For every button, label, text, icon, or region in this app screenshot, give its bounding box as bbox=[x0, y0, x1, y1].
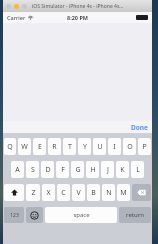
staticText: E bbox=[38, 142, 42, 152]
staticText: iOS Simulator - iPhone 4s - iPhone 4s… bbox=[32, 3, 124, 10]
button[interactable]: return bbox=[119, 207, 151, 224]
staticText: N bbox=[106, 188, 112, 198]
staticText: X bbox=[46, 188, 51, 198]
button[interactable]: E bbox=[33, 138, 46, 156]
button[interactable]: C bbox=[57, 184, 70, 202]
button[interactable]: Done bbox=[131, 121, 148, 133]
staticText: T bbox=[68, 142, 72, 152]
button[interactable]: B bbox=[87, 184, 100, 202]
staticText: D bbox=[45, 165, 51, 175]
button[interactable]: 123 bbox=[4, 207, 24, 224]
button[interactable]: Emoji bbox=[26, 207, 43, 224]
staticText: space bbox=[73, 211, 90, 219]
staticText: C bbox=[61, 188, 66, 198]
staticText: P bbox=[142, 142, 147, 152]
button[interactable]: G bbox=[71, 161, 84, 179]
button[interactable]: M bbox=[117, 184, 130, 202]
staticText: V bbox=[76, 188, 81, 198]
staticText: A bbox=[15, 165, 20, 175]
button[interactable]: K bbox=[116, 161, 129, 179]
button[interactable] bbox=[22, 4, 27, 9]
button[interactable]: R bbox=[48, 138, 61, 156]
button[interactable]: A bbox=[11, 161, 24, 179]
staticText: J bbox=[107, 165, 109, 175]
staticText: F bbox=[61, 165, 65, 175]
button[interactable]: W bbox=[18, 138, 31, 156]
button[interactable]: Z bbox=[26, 184, 40, 202]
button[interactable]: U bbox=[93, 138, 106, 156]
staticText: G bbox=[75, 165, 81, 175]
staticText: M bbox=[120, 188, 127, 198]
staticText: S bbox=[31, 165, 35, 175]
button[interactable]: Q bbox=[4, 138, 16, 156]
button[interactable]: Shift bbox=[4, 184, 24, 202]
button[interactable]: D bbox=[41, 161, 54, 179]
staticText: return bbox=[126, 211, 144, 219]
button[interactable]: T bbox=[63, 138, 76, 156]
staticText: 123 bbox=[10, 212, 19, 219]
staticText: L bbox=[136, 165, 140, 175]
button[interactable]: I bbox=[108, 138, 121, 156]
button[interactable]: F bbox=[56, 161, 69, 179]
button[interactable]: space bbox=[45, 207, 117, 224]
button[interactable]: X bbox=[42, 184, 55, 202]
staticText: B bbox=[91, 188, 96, 198]
staticText: I bbox=[113, 142, 116, 152]
button[interactable]: S bbox=[26, 161, 39, 179]
staticText: Z bbox=[31, 188, 36, 198]
staticText: Q bbox=[7, 142, 13, 152]
button[interactable]: N bbox=[102, 184, 115, 202]
button[interactable]: O bbox=[123, 138, 136, 156]
staticText: R bbox=[52, 142, 57, 152]
button[interactable]: L bbox=[131, 161, 144, 179]
button[interactable]: V bbox=[72, 184, 85, 202]
staticText: 8:20 PM bbox=[67, 14, 89, 21]
staticText: Done bbox=[131, 123, 148, 132]
button[interactable]: P bbox=[138, 138, 151, 156]
button[interactable] bbox=[14, 4, 19, 9]
button[interactable] bbox=[6, 4, 11, 9]
button[interactable]: H bbox=[86, 161, 99, 179]
staticText: H bbox=[90, 165, 96, 175]
button[interactable]: J bbox=[101, 161, 114, 179]
staticText: W bbox=[21, 142, 28, 152]
button[interactable]: Y bbox=[78, 138, 91, 156]
staticText: Y bbox=[83, 142, 87, 152]
button[interactable]: Delete bbox=[132, 184, 151, 202]
staticText: O bbox=[127, 142, 133, 152]
staticText: U bbox=[97, 142, 103, 152]
staticText: K bbox=[120, 165, 125, 175]
staticText: Carrier bbox=[7, 14, 26, 21]
